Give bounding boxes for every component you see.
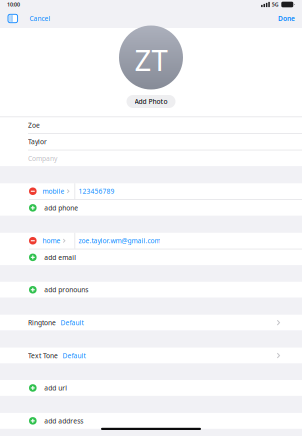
button[interactable]: Done <box>273 12 300 25</box>
button[interactable]: home <box>38 233 74 249</box>
staticText: Taylor <box>28 137 47 146</box>
button[interactable]: Delete home <box>29 233 38 249</box>
staticText: add address <box>44 416 83 425</box>
button[interactable]: Text Tone <box>0 348 302 363</box>
staticText: add email <box>44 253 76 262</box>
staticText: 123456789 <box>78 187 114 196</box>
button[interactable]: Delete mobile <box>29 183 38 199</box>
staticText: add phone <box>44 203 78 212</box>
button[interactable]: Add Photo <box>126 95 175 108</box>
button[interactable]: add url <box>0 380 302 396</box>
button[interactable]: add address <box>0 413 302 429</box>
staticText: Text Tone <box>28 351 58 360</box>
staticText: mobile <box>43 187 65 196</box>
button[interactable]: add phone <box>0 200 302 216</box>
button[interactable]: add pronouns <box>0 282 302 298</box>
staticText: Zoe <box>28 121 40 130</box>
staticText: 10:00 <box>7 1 20 8</box>
button[interactable]: Ringtone <box>0 315 302 331</box>
button[interactable]: Show Sidebar <box>6 11 20 26</box>
staticText: Default <box>60 318 83 327</box>
button[interactable]: add email <box>0 249 302 265</box>
staticText: ZT <box>134 40 167 79</box>
staticText: Add Photo <box>134 97 167 106</box>
button[interactable]: Cancel <box>25 12 56 25</box>
staticText: Done <box>278 14 295 23</box>
staticText: add url <box>44 383 67 392</box>
staticText: zoe.taylor.wm@gmail.com <box>78 236 160 245</box>
staticText: Ringtone <box>28 318 56 327</box>
staticText: Company <box>28 154 57 163</box>
staticText: 5G <box>272 1 279 8</box>
staticText: add pronouns <box>44 285 88 294</box>
staticText: Cancel <box>30 14 51 23</box>
button[interactable]: mobile <box>38 183 74 199</box>
staticText: Default <box>62 351 85 360</box>
staticText: home <box>43 236 61 245</box>
